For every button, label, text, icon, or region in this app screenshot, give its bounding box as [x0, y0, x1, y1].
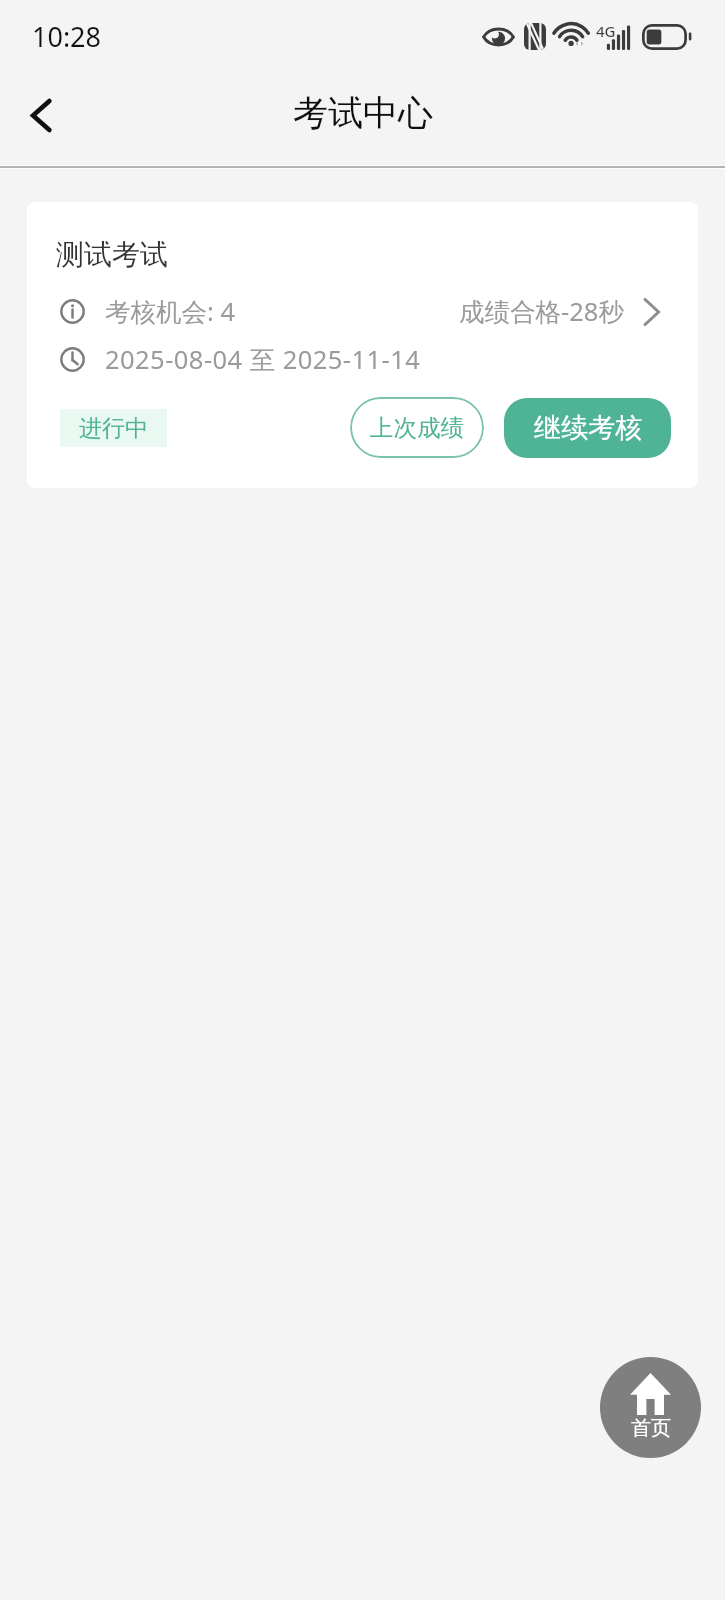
- button[interactable]: 测试考试: [27, 202, 698, 488]
- staticText: 进行中: [79, 414, 148, 443]
- button[interactable]: 首页: [600, 1357, 701, 1458]
- staticText: 首页: [631, 1416, 671, 1441]
- staticText: 4G: [596, 21, 616, 41]
- staticText: 2025-08-04 至 2025-11-14: [105, 342, 421, 377]
- staticText: 测试考试: [56, 237, 168, 272]
- staticText: 考核机会: 4: [105, 294, 236, 329]
- staticText: 上次成绩: [370, 413, 464, 443]
- staticText: 成绩合格-28秒: [459, 294, 624, 329]
- staticText: 10:28: [32, 18, 102, 55]
- button[interactable]: 上次成绩: [350, 397, 484, 458]
- staticText: 继续考核: [534, 411, 642, 445]
- staticText: 考试中心: [293, 91, 433, 135]
- button[interactable]: 继续考核: [504, 398, 671, 458]
- button[interactable]: Back: [3, 77, 79, 153]
